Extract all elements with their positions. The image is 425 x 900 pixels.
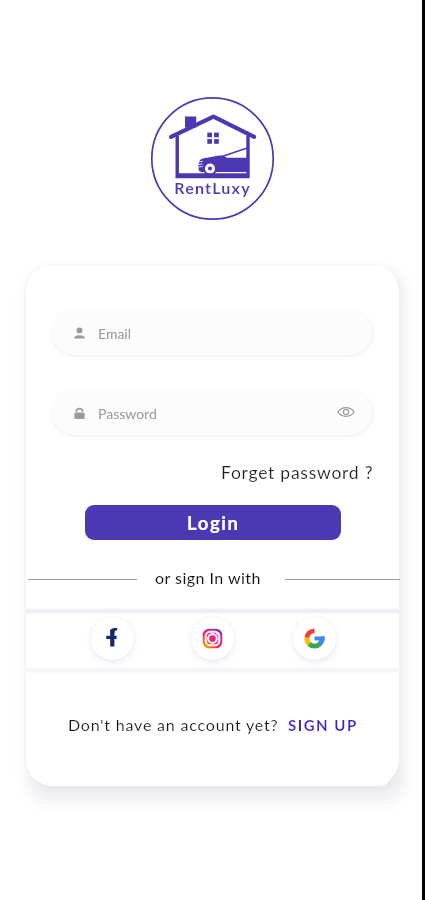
staticText: Forget password ? xyxy=(221,462,374,483)
staticText: RentLuxy xyxy=(174,178,251,197)
button[interactable]: Login xyxy=(85,505,341,540)
staticText: or sign In with xyxy=(155,568,261,587)
button[interactable]: SIGN UP xyxy=(288,716,358,734)
staticText: Don't have an account yet? xyxy=(68,715,279,734)
button[interactable]: Email xyxy=(52,309,372,355)
button[interactable]: Google xyxy=(293,617,336,660)
staticText: Login xyxy=(187,512,240,534)
button[interactable]: Forget password ? xyxy=(194,460,374,484)
button[interactable]: Instagram xyxy=(191,617,234,660)
staticText: Email xyxy=(98,325,132,342)
button[interactable]: Password xyxy=(52,389,372,435)
staticText: Password xyxy=(98,405,157,422)
button[interactable]: Facebook xyxy=(91,617,134,660)
